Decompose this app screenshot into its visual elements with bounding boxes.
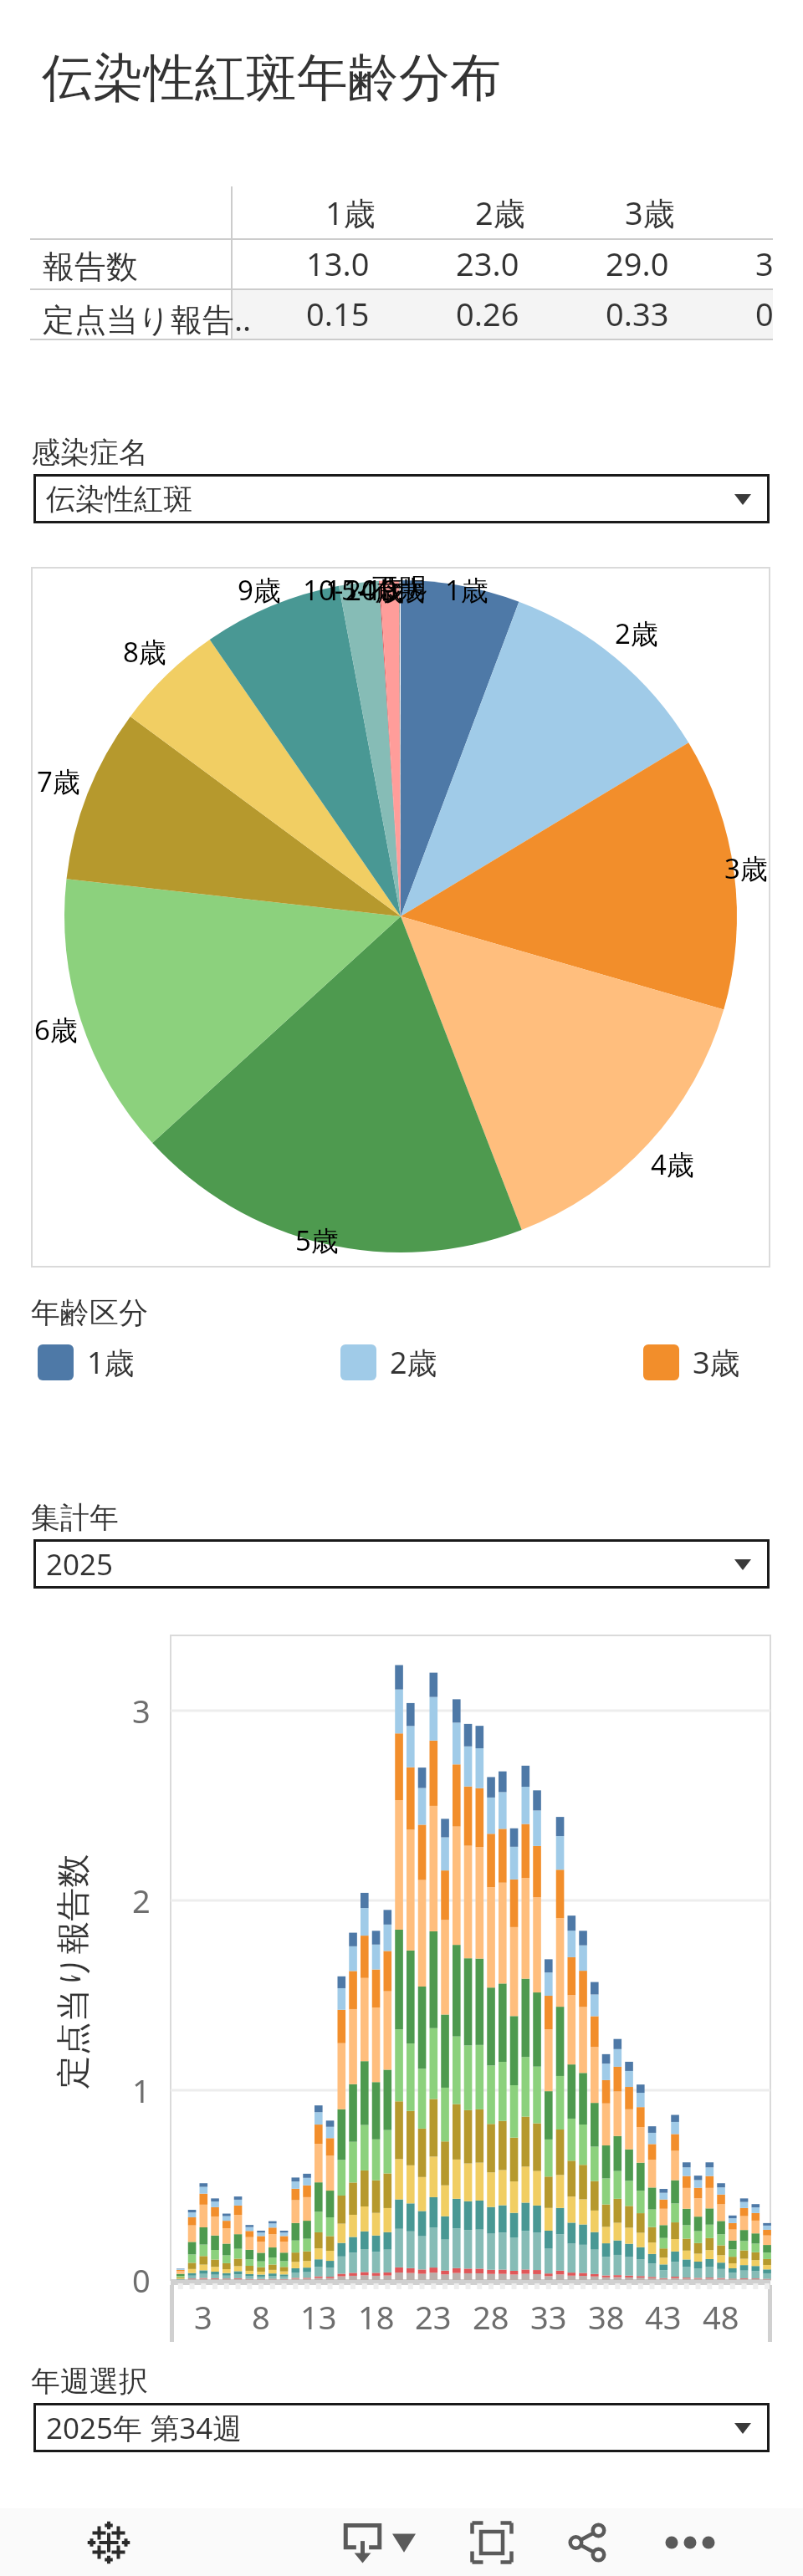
staticText: 1 bbox=[132, 2068, 151, 2112]
button[interactable]: 2025 bbox=[33, 1539, 770, 1589]
staticText: 38 bbox=[588, 2295, 625, 2339]
staticText: 2歳 bbox=[390, 1342, 437, 1383]
staticText: 3歳 bbox=[625, 191, 675, 234]
staticText: 8 bbox=[252, 2295, 270, 2339]
staticText: 5歳 bbox=[295, 1222, 339, 1259]
button[interactable]: 3歳 bbox=[643, 1341, 740, 1383]
staticText: 18 bbox=[358, 2295, 395, 2339]
staticText: 9歳 bbox=[238, 571, 281, 609]
button[interactable]: Share bbox=[552, 2507, 624, 2576]
staticText: 伝染性紅斑年齢分布 bbox=[42, 46, 501, 110]
staticText: 15-19歳 bbox=[325, 571, 426, 609]
staticText: 33 bbox=[530, 2295, 567, 2339]
staticText: 3歳 bbox=[693, 1342, 740, 1383]
staticText: 定点当り報告.. bbox=[43, 297, 252, 340]
button[interactable]: 2歳 bbox=[340, 1341, 437, 1383]
staticText: 0.33 bbox=[606, 292, 669, 335]
staticText: 1歳 bbox=[325, 191, 376, 234]
staticText: 13.0 bbox=[306, 242, 370, 285]
staticText: 20歳～ bbox=[345, 571, 432, 609]
button[interactable]: Download options bbox=[382, 2522, 426, 2565]
staticText: 3 bbox=[132, 1689, 151, 1732]
staticText: 7歳 bbox=[37, 763, 80, 800]
staticText: 0.38 bbox=[755, 292, 773, 335]
staticText: 2 bbox=[132, 1879, 151, 1922]
button[interactable]: Full screen bbox=[456, 2507, 528, 2576]
staticText: 10-14歳 bbox=[303, 571, 403, 609]
staticText: 29.0 bbox=[606, 242, 669, 285]
staticText: 0.15 bbox=[306, 292, 370, 335]
staticText: 4歳 bbox=[651, 1145, 694, 1183]
staticText: 2025年 第34週 bbox=[46, 2408, 243, 2448]
staticText: 報告数 bbox=[43, 247, 138, 287]
staticText: 年週選択 bbox=[31, 2363, 148, 2400]
staticText: 23.0 bbox=[456, 242, 519, 285]
button[interactable]: 1歳 bbox=[38, 1341, 135, 1383]
staticText: 33.0 bbox=[755, 242, 773, 285]
staticText: 23 bbox=[415, 2295, 452, 2339]
staticText: 0.26 bbox=[456, 292, 519, 335]
staticText: 1歳 bbox=[445, 571, 488, 609]
staticText: 8歳 bbox=[123, 633, 166, 671]
staticText: 0 bbox=[132, 2258, 151, 2302]
staticText: 感染症名 bbox=[31, 434, 148, 471]
staticText: 43 bbox=[645, 2295, 682, 2339]
staticText: 2歳 bbox=[615, 615, 658, 652]
staticText: 伝染性紅斑 bbox=[46, 481, 192, 518]
staticText: 3 bbox=[194, 2295, 212, 2339]
staticText: 13 bbox=[300, 2295, 337, 2339]
staticText: 年齢区分 bbox=[31, 1294, 148, 1331]
staticText: 集計年 bbox=[31, 1499, 119, 1536]
staticText: 2歳 bbox=[475, 191, 525, 234]
staticText: 6歳 bbox=[34, 1011, 78, 1048]
button[interactable]: 2025年 第34週 bbox=[33, 2403, 770, 2452]
button[interactable]: Download bbox=[326, 2507, 398, 2576]
button[interactable]: More options bbox=[654, 2507, 726, 2576]
staticText: 定点当り報告数 bbox=[51, 1854, 93, 2089]
staticText: 48 bbox=[703, 2295, 739, 2339]
staticText: 28 bbox=[473, 2295, 509, 2339]
staticText: 不明 bbox=[371, 571, 427, 606]
staticText: 1歳 bbox=[87, 1342, 135, 1383]
staticText: 2025 bbox=[46, 1544, 114, 1584]
button[interactable]: Tableau bbox=[73, 2507, 145, 2576]
button[interactable]: 伝染性紅斑 bbox=[33, 474, 770, 523]
staticText: 3歳 bbox=[724, 849, 768, 887]
